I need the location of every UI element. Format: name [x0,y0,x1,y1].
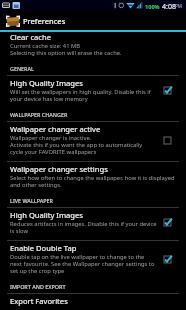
staticText: Enable Double Tap [10,243,77,253]
button[interactable]: Clear cache [0,32,186,57]
other: Disabled checkbox [162,135,173,146]
staticText: 4:08 [162,2,176,12]
staticText: LIVE WALLPAPER [10,197,53,204]
staticText: GENERAL [10,65,34,72]
staticText: Wallpaper changer settings [10,164,108,174]
other: Enabled checkbox [162,254,173,265]
staticText: WALLPAPER CHANGER [10,111,68,118]
other: Enabled checkbox [162,85,173,96]
staticText: Export Favorites [10,296,68,306]
button[interactable]: Wallpaper changer settings [0,164,186,189]
staticText: IMPORT AND EXPORT [10,283,66,290]
staticText: High Quality Images [10,78,83,88]
button[interactable]: Enable Double Tap [0,243,186,275]
staticText: PM [175,3,182,9]
staticText: 100% [145,3,160,11]
button[interactable]: Export Favorites [0,296,186,306]
staticText: Current cache size: 41 MB Selecting this… [10,42,122,57]
staticText: Reduces artifacts in images. Disable thi… [10,220,157,235]
button[interactable]: High Quality Images [0,210,186,235]
staticText: Preferences [23,16,66,26]
staticText: Select how often to change the wallpaper… [10,174,178,189]
button[interactable]: App icon [0,11,186,30]
staticText: Double tap on the live wallpaper to chan… [10,253,157,275]
staticText: Wallpaper changer is inactive. Activate … [10,134,157,156]
staticText: Will set the wallpapers in high quality.… [10,88,157,103]
staticText: High Quality Images [10,210,83,220]
other: Enabled checkbox [162,217,173,228]
other: App icon [6,15,20,27]
button[interactable]: Wallpaper changer active [0,124,186,156]
button[interactable]: High Quality Images [0,78,186,103]
staticText: Wallpaper changer active [10,124,101,134]
staticText: Clear cache [10,32,51,42]
